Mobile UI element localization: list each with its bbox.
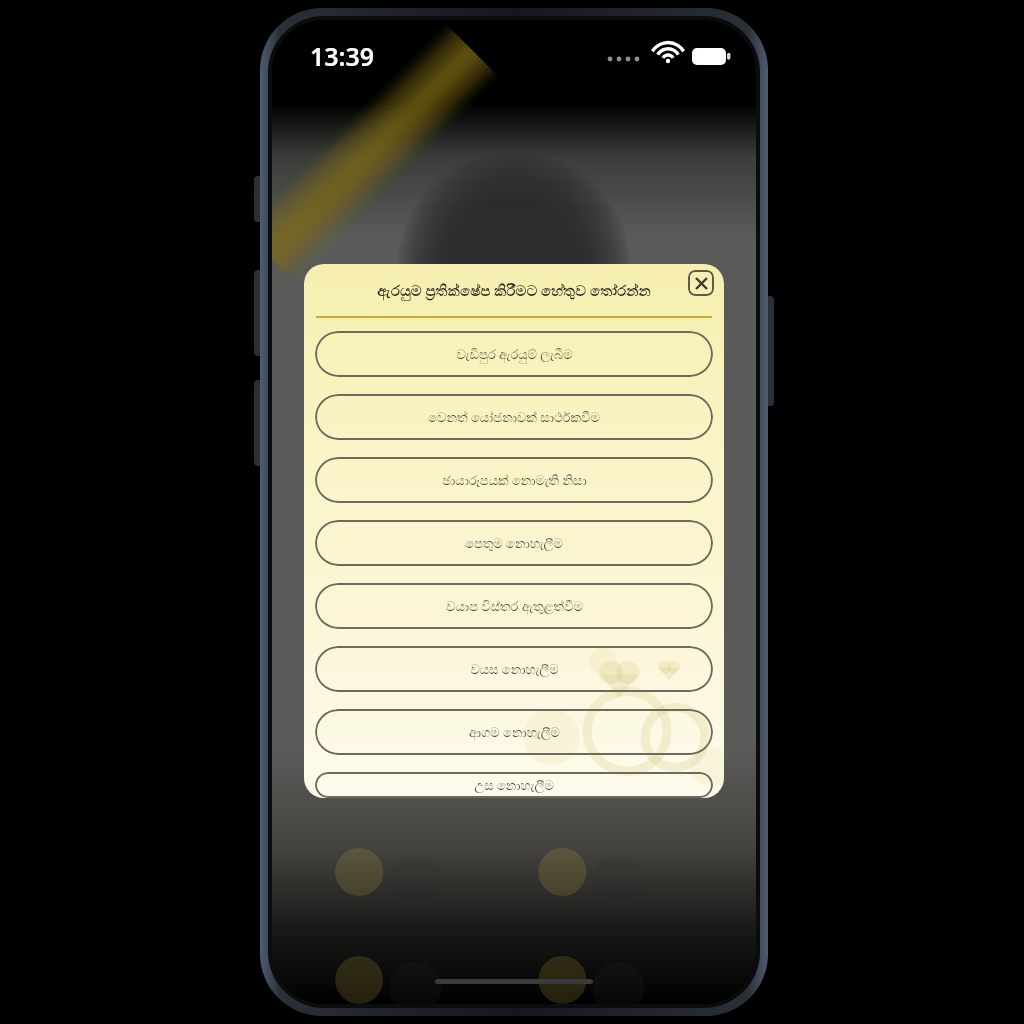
button[interactable]: උස නොහැලීම [315, 772, 713, 798]
button[interactable]: Close [688, 270, 714, 296]
button[interactable]: වැඩිපුර ඇරයුම් ලැබීම [315, 331, 713, 377]
staticText: පෙතුම නොහැලීම [465, 534, 563, 552]
button[interactable]: පෙතුම නොහැලීම [315, 520, 713, 566]
button[interactable]: වයාප විස්තර ඇතුළත්වීම [315, 583, 713, 629]
staticText: වයාප විස්තර ඇතුළත්වීම [446, 597, 583, 615]
button[interactable]: වයස නොහැලීම [315, 646, 713, 692]
staticText: වෙනත් යෝජනාවක් සාර්ථකවීම [428, 408, 600, 426]
staticText: ආගම නොහැලීම [469, 723, 560, 741]
staticText: 13:39 [310, 39, 375, 73]
staticText: උස නොහැලීම [474, 776, 554, 794]
staticText: ඇරයුම ප්‍රතික්ෂේප කිරීමට හේතුව තෝරන්න [377, 280, 651, 300]
staticText: ඡායාරූපයක් නොමැති නිසා [442, 471, 587, 489]
button[interactable]: ඡායාරූපයක් නොමැති නිසා [315, 457, 713, 503]
staticText: වයස නොහැලීම [470, 660, 559, 678]
staticText: වැඩිපුර ඇරයුම් ලැබීම [456, 345, 573, 363]
button[interactable]: වෙනත් යෝජනාවක් සාර්ථකවීම [315, 394, 713, 440]
button[interactable]: ආගම නොහැලීම [315, 709, 713, 755]
